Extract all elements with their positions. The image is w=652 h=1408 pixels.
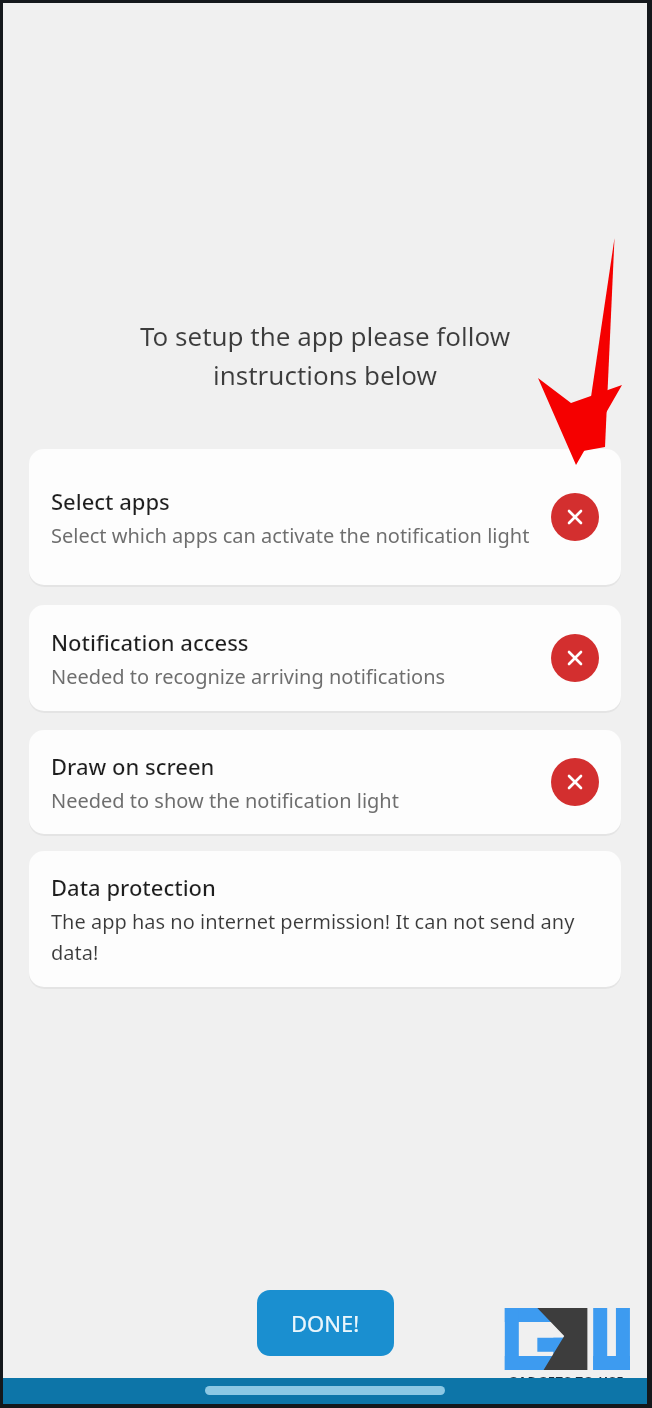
button[interactable]: Fix Notification access permission xyxy=(551,634,599,682)
staticText: Needed to recognize arriving notificatio… xyxy=(51,663,446,690)
button[interactable]: Draw on screen xyxy=(29,730,621,834)
staticText: Data protection xyxy=(51,872,216,902)
staticText: Select which apps can activate the notif… xyxy=(51,522,530,549)
button[interactable]: DONE! xyxy=(257,1290,394,1356)
staticText: The app has no internet permission! It c… xyxy=(51,908,589,966)
button[interactable]: Fix Select apps permission xyxy=(551,493,599,541)
button[interactable]: Notification access xyxy=(29,605,621,711)
staticText: GADGETS TO USE xyxy=(508,1372,625,1390)
staticText: Select apps xyxy=(51,486,170,516)
button[interactable]: Select apps xyxy=(29,449,621,585)
staticText: Needed to show the notification light xyxy=(51,787,399,814)
button[interactable]: Fix Draw on screen permission xyxy=(551,758,599,806)
staticText: Draw on screen xyxy=(51,751,215,781)
staticText: DONE! xyxy=(291,1308,360,1338)
staticText: Notification access xyxy=(51,627,249,657)
staticText: To setup the app please follow instructi… xyxy=(27,318,623,393)
button[interactable]: Data protection xyxy=(29,851,621,987)
